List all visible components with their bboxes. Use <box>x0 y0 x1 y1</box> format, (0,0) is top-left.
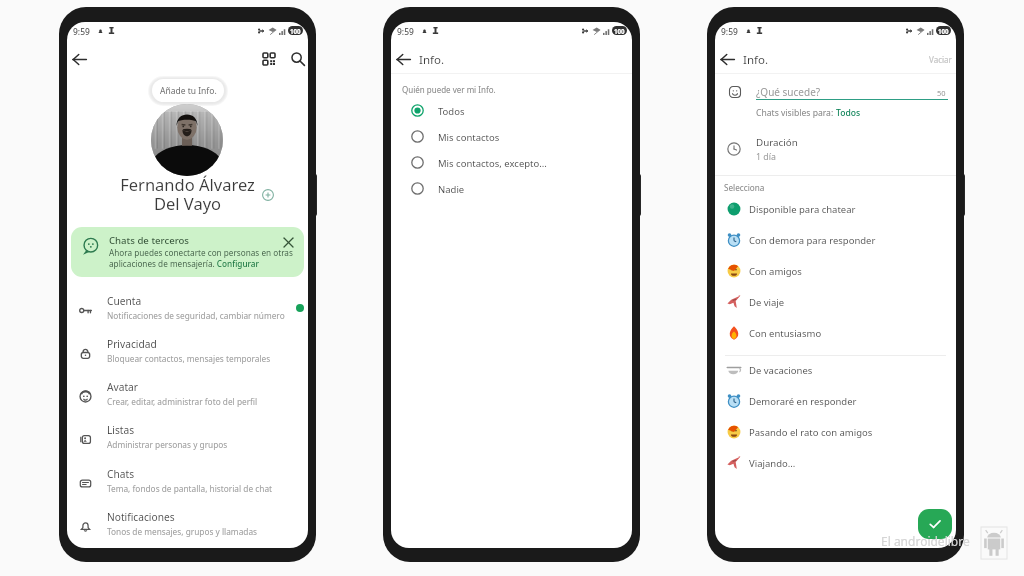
button[interactable]: Privacidad <box>67 332 308 375</box>
staticText: 100 <box>938 27 949 35</box>
staticText: Chats <box>107 467 135 481</box>
button[interactable]: De vacaciones <box>715 355 956 386</box>
button[interactable]: Close <box>280 234 296 250</box>
button[interactable]: Confirm <box>918 509 952 539</box>
staticText: Añade tu Info. <box>160 85 217 97</box>
button[interactable]: Chats de terceros <box>71 227 304 277</box>
button[interactable]: Pasando el rato con amigos <box>715 417 956 448</box>
staticText: Info. <box>419 52 445 68</box>
staticText: Administrar personas y grupos <box>107 439 228 450</box>
button[interactable]: Back <box>67 46 92 72</box>
staticText: Cuenta <box>107 294 142 308</box>
button[interactable]: QR code <box>256 46 282 72</box>
button[interactable]: Avatar <box>67 375 308 418</box>
staticText: Quién puede ver mi Info. <box>402 84 496 95</box>
button[interactable]: De viaje <box>715 287 956 318</box>
button[interactable]: Demoraré en responder <box>715 386 956 417</box>
button[interactable]: Con entusiasmo <box>715 318 956 349</box>
staticText: Notificaciones <box>107 510 175 524</box>
button[interactable]: Todos <box>391 98 632 124</box>
staticText: Ahora puedes conectarte con personas en … <box>109 247 301 269</box>
staticText: 50 <box>937 88 946 98</box>
button[interactable]: Vaciar <box>925 50 956 69</box>
staticText: Viajando... <box>749 457 796 470</box>
button[interactable]: Con amigos <box>715 256 956 287</box>
button[interactable]: Back <box>715 46 740 72</box>
button[interactable]: Nadie <box>391 176 632 202</box>
staticText: 9:59 <box>73 26 90 38</box>
button[interactable]: Viajando... <box>715 448 956 479</box>
staticText: 9:59 <box>397 26 414 38</box>
button[interactable]: Disponible para chatear <box>715 194 956 225</box>
staticText: Mis contactos, excepto... <box>438 157 547 170</box>
staticText: Chats de terceros <box>109 234 190 247</box>
button[interactable]: Back <box>391 46 416 72</box>
staticText: ¿Qué sucede? <box>756 85 821 99</box>
button[interactable]: Mis contactos <box>391 124 632 150</box>
staticText: El androidelibre <box>881 533 970 549</box>
staticText: Chats visibles para: <box>756 107 836 119</box>
staticText: Pasando el rato con amigos <box>749 426 873 439</box>
staticText: Privacidad <box>107 337 157 351</box>
button[interactable]: Profile photo <box>151 104 223 176</box>
button[interactable]: Notificaciones <box>67 505 308 548</box>
button[interactable]: Status text field <box>756 82 948 100</box>
button[interactable]: Chats <box>67 462 308 505</box>
staticText: 9:59 <box>721 26 738 38</box>
staticText: De vacaciones <box>749 364 813 377</box>
staticText: Avatar <box>107 380 139 394</box>
staticText: 100 <box>614 27 625 35</box>
staticText: Demoraré en responder <box>749 395 857 408</box>
staticText: Con demora para responder <box>749 234 876 247</box>
button[interactable]: Con demora para responder <box>715 225 956 256</box>
button[interactable]: Cuenta <box>67 289 308 332</box>
staticText: Con amigos <box>749 265 802 278</box>
staticText: Listas <box>107 423 135 437</box>
staticText: Selecciona <box>724 182 765 193</box>
button[interactable]: Search <box>285 46 308 72</box>
button[interactable]: Emoji <box>727 84 743 100</box>
staticText: Tonos de mensajes, grupos y llamadas <box>107 526 258 537</box>
staticText: Info. <box>743 52 769 68</box>
staticText: Crear, editar, administrar foto del perf… <box>107 396 258 407</box>
staticText: Fernando Álvarez Del Vayo <box>67 173 308 215</box>
staticText: 1 día <box>756 151 776 163</box>
button[interactable]: Listas <box>67 418 308 461</box>
staticText: De viaje <box>749 296 785 309</box>
button[interactable]: Mis contactos, excepto... <box>391 150 632 176</box>
staticText: Todos <box>438 105 465 118</box>
staticText: Nadie <box>438 183 465 196</box>
button[interactable]: Añade tu Info. <box>152 79 224 102</box>
staticText: Vaciar <box>929 54 952 65</box>
staticText: Disponible para chatear <box>749 203 856 216</box>
staticText: 100 <box>290 27 301 35</box>
staticText: Notificaciones de seguridad, cambiar núm… <box>107 310 285 321</box>
staticText: Bloquear contactos, mensajes temporales <box>107 353 271 364</box>
staticText: Con entusiasmo <box>749 327 822 340</box>
staticText: Todos <box>836 107 861 119</box>
staticText: Tema, fondos de pantalla, historial de c… <box>107 483 273 494</box>
button[interactable]: Add to status <box>258 185 278 205</box>
staticText: Mis contactos <box>438 131 500 144</box>
staticText: Duración <box>756 136 798 149</box>
button[interactable]: Duración <box>715 130 956 168</box>
